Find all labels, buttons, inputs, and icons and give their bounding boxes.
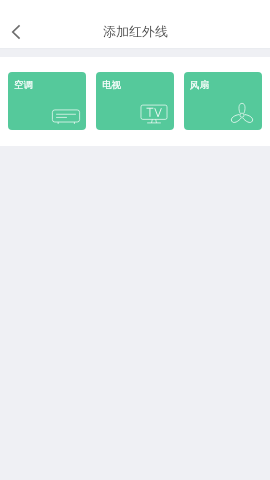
staticText: 风扇 bbox=[190, 79, 209, 91]
button[interactable]: Back bbox=[0, 22, 31, 42]
button[interactable]: 空调 bbox=[8, 72, 86, 130]
staticText: 电视 bbox=[102, 79, 121, 91]
button[interactable]: 风扇 bbox=[184, 72, 262, 130]
button[interactable]: 电视 bbox=[96, 72, 174, 130]
staticText: 添加红外线 bbox=[103, 23, 168, 39]
staticText: 空调 bbox=[14, 79, 33, 91]
